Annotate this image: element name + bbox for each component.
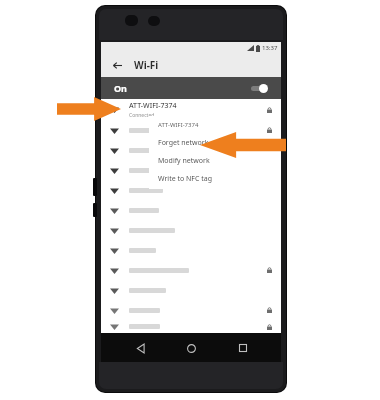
button[interactable]: Write to NFC tag (149, 170, 235, 188)
button[interactable] (101, 260, 281, 280)
staticText: Write to NFC tag (158, 174, 212, 184)
staticText: 13:37 (262, 44, 278, 52)
button[interactable] (101, 200, 281, 220)
button[interactable] (101, 160, 281, 180)
staticText: Connected (129, 112, 155, 119)
button[interactable] (101, 220, 281, 240)
button[interactable]: Modify network (149, 152, 235, 170)
button[interactable] (101, 120, 281, 140)
button[interactable]: Home (178, 335, 204, 361)
staticText: On (114, 82, 127, 94)
staticText: ATT-WIFI-7374 (129, 101, 177, 111)
button[interactable] (101, 320, 281, 333)
staticText: Wi-Fi (134, 58, 159, 72)
button[interactable]: Forget network (149, 134, 235, 152)
button[interactable] (101, 140, 281, 160)
staticText: Forget network (158, 138, 209, 148)
button[interactable]: ATT-WIFI-7374 (149, 116, 235, 134)
staticText: Modify network (158, 156, 210, 166)
button[interactable]: On (101, 77, 281, 99)
button[interactable] (101, 280, 281, 300)
button[interactable] (101, 300, 281, 320)
button[interactable] (101, 240, 281, 260)
button[interactable]: Navigate up (109, 57, 125, 73)
button[interactable]: Back (127, 335, 153, 361)
staticText: ATT-WIFI-7374 (158, 121, 199, 129)
button[interactable]: ATT-WIFI-7374 (101, 99, 281, 120)
button[interactable]: Recent apps (230, 335, 256, 361)
button[interactable] (101, 180, 281, 200)
